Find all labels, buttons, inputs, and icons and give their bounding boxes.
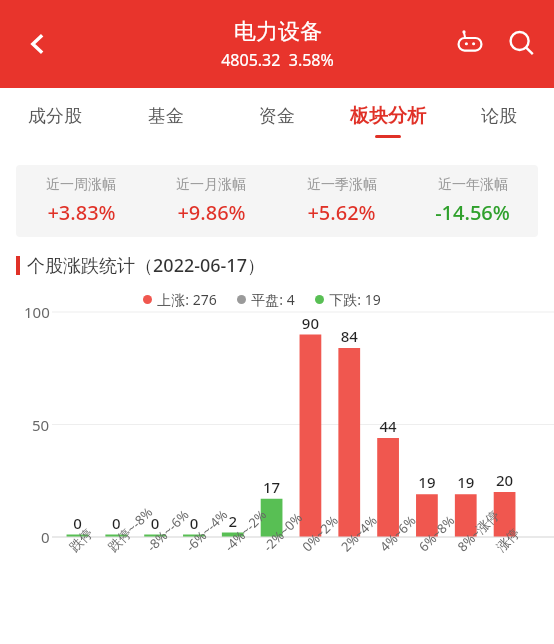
staticText: 基金: [148, 105, 184, 128]
staticText: 4805.32 3.58%: [221, 49, 334, 71]
staticText: -14.56%: [435, 199, 510, 226]
staticText: 近一周涨幅: [46, 176, 116, 194]
button[interactable]: 近一月涨幅: [146, 176, 276, 226]
staticText: 下跌: 19: [329, 290, 381, 309]
staticText: 成分股: [28, 105, 82, 128]
button[interactable]: 资金: [221, 88, 332, 148]
button[interactable]: 成分股: [0, 88, 110, 148]
button[interactable]: 近一季涨幅: [276, 176, 407, 226]
button[interactable]: 论股: [443, 88, 554, 148]
button[interactable]: 基金: [110, 88, 221, 148]
button[interactable]: AI assistant: [444, 18, 496, 70]
staticText: 近一年涨幅: [438, 176, 508, 194]
button[interactable]: Search: [496, 18, 548, 70]
button[interactable]: Back: [10, 16, 66, 72]
staticText: 平盘: 4: [251, 290, 295, 309]
staticText: 个股涨跌统计（2022-06-17）: [27, 253, 265, 278]
staticText: 近一月涨幅: [176, 176, 246, 194]
staticText: +9.86%: [177, 199, 246, 226]
staticText: 板块分析: [350, 104, 426, 128]
staticText: +3.83%: [47, 199, 116, 226]
button[interactable]: 近一年涨幅: [407, 176, 538, 226]
staticText: 上涨: 276: [157, 290, 217, 309]
staticText: +5.62%: [307, 199, 376, 226]
button[interactable]: 近一周涨幅: [16, 176, 146, 226]
staticText: 近一季涨幅: [307, 176, 377, 194]
button[interactable]: 板块分析: [332, 88, 443, 148]
staticText: 资金: [259, 105, 295, 128]
staticText: 电力设备: [234, 18, 322, 46]
staticText: 论股: [481, 105, 517, 128]
